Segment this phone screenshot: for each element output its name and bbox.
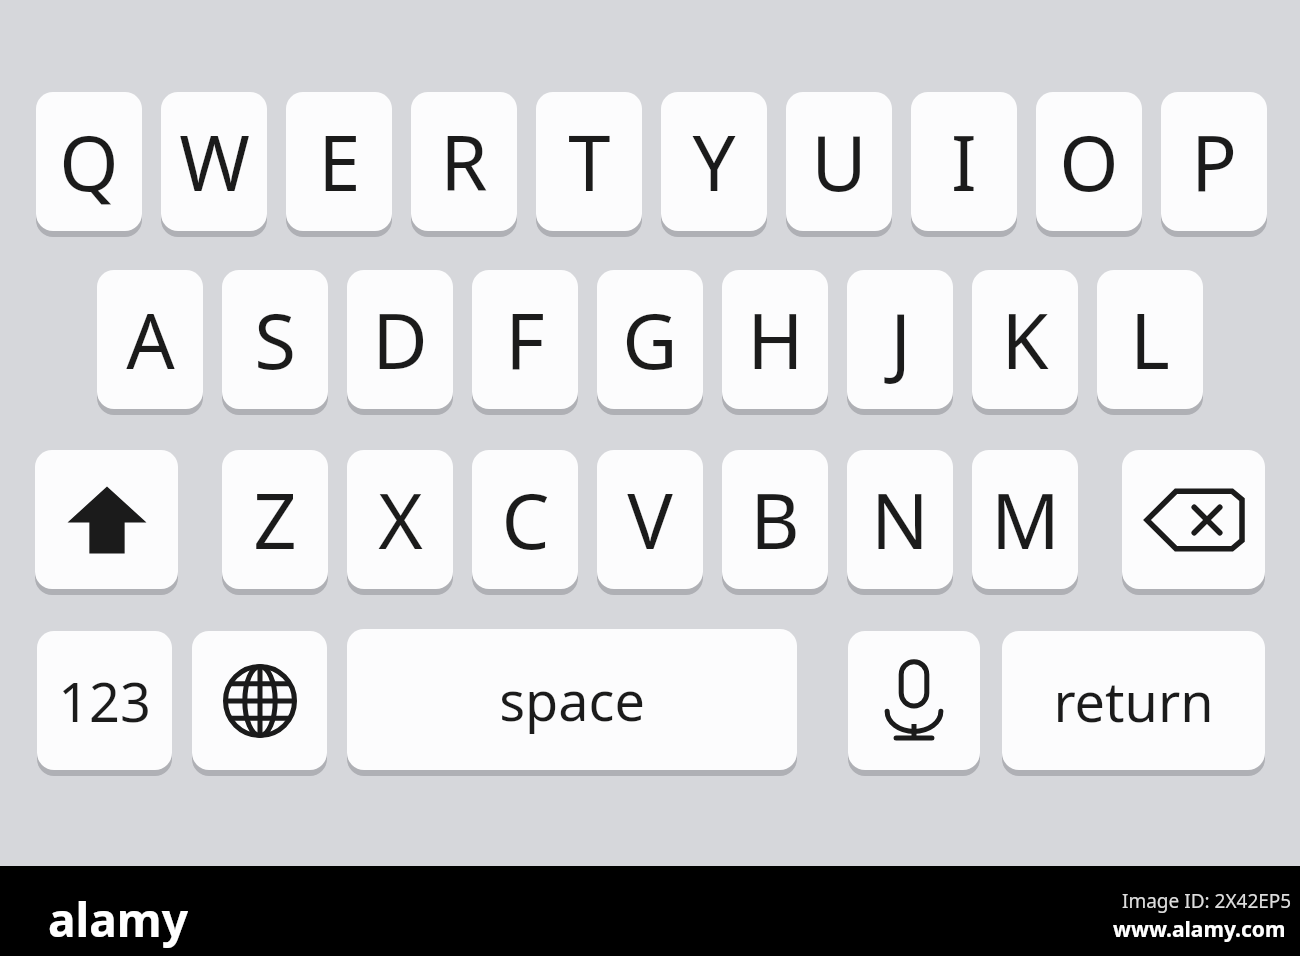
button[interactable]: C [472, 450, 578, 589]
button[interactable]: R [411, 92, 517, 231]
button[interactable]: F [472, 270, 578, 409]
staticText: Y [692, 110, 736, 214]
staticText: Z [253, 468, 297, 572]
button[interactable]: N [847, 450, 953, 589]
staticText: F [505, 288, 545, 392]
staticText: K [1001, 288, 1049, 392]
button[interactable]: Voice input [848, 631, 980, 770]
staticText: J [890, 288, 911, 392]
staticText: I [951, 110, 977, 214]
button[interactable]: H [722, 270, 828, 409]
staticText: W [179, 110, 250, 214]
button[interactable]: J [847, 270, 953, 409]
staticText: X [378, 468, 423, 572]
button[interactable]: D [347, 270, 453, 409]
staticText: T [568, 110, 611, 214]
staticText: U [811, 110, 867, 214]
staticText: alamy [48, 888, 188, 951]
staticText: D [372, 288, 428, 392]
staticText: B [750, 468, 800, 572]
staticText: space [499, 663, 645, 737]
staticText: M [991, 468, 1060, 572]
staticText: R [440, 110, 488, 214]
staticText: C [501, 468, 550, 572]
staticText: E [318, 110, 361, 214]
button[interactable]: X [347, 450, 453, 589]
button[interactable]: return [1002, 631, 1265, 770]
button[interactable]: space [347, 629, 797, 770]
button[interactable]: W [161, 92, 267, 231]
button[interactable]: V [597, 450, 703, 589]
staticText: 123 [58, 664, 151, 738]
button[interactable]: I [911, 92, 1017, 231]
staticText: L [1130, 288, 1170, 392]
button[interactable]: T [536, 92, 642, 231]
button[interactable]: Q [36, 92, 142, 231]
staticText: Image ID: 2X42EP5 [1122, 888, 1292, 914]
staticText: www.alamy.com [1113, 915, 1286, 944]
button[interactable]: Switch keyboard [192, 631, 327, 770]
staticText: S [254, 288, 296, 392]
staticText: P [1191, 110, 1237, 214]
staticText: Q [59, 110, 119, 214]
staticText: O [1059, 110, 1119, 214]
staticText: return [1053, 664, 1214, 738]
button[interactable]: S [222, 270, 328, 409]
button[interactable]: Z [222, 450, 328, 589]
button[interactable]: O [1036, 92, 1142, 231]
button[interactable]: K [972, 270, 1078, 409]
button[interactable]: Y [661, 92, 767, 231]
button[interactable]: 123 [37, 631, 172, 770]
button[interactable]: A [97, 270, 203, 409]
button[interactable]: U [786, 92, 892, 231]
staticText: H [747, 288, 804, 392]
button[interactable]: G [597, 270, 703, 409]
button[interactable]: M [972, 450, 1078, 589]
staticText: V [627, 468, 673, 572]
staticText: G [622, 288, 678, 392]
staticText: A [126, 288, 175, 392]
button[interactable]: Backspace [1122, 450, 1265, 589]
button[interactable]: Shift [35, 450, 178, 589]
button[interactable]: L [1097, 270, 1203, 409]
button[interactable]: B [722, 450, 828, 589]
button[interactable]: E [286, 92, 392, 231]
button[interactable]: P [1161, 92, 1267, 231]
staticText: N [871, 468, 929, 572]
